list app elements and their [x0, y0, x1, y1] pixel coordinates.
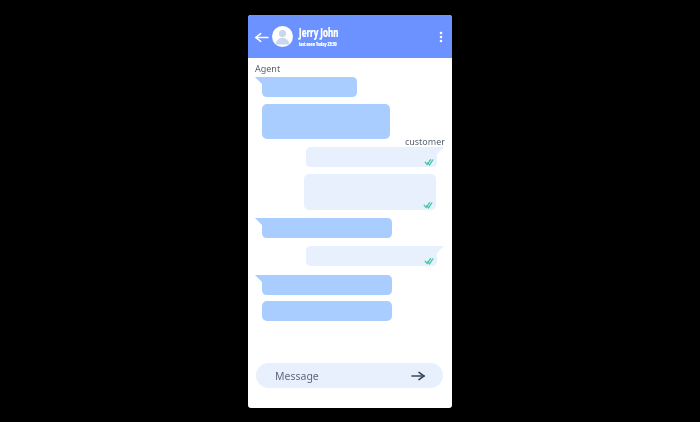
button[interactable]	[262, 104, 390, 139]
button[interactable]	[304, 174, 436, 210]
button[interactable]: More options	[431, 27, 451, 47]
button[interactable]: Send	[408, 366, 427, 385]
button[interactable]	[255, 218, 392, 238]
button[interactable]	[255, 275, 392, 295]
staticText: Message	[275, 369, 319, 383]
button[interactable]: Message	[256, 363, 443, 388]
button[interactable]	[306, 246, 444, 266]
button[interactable]	[306, 147, 444, 167]
button[interactable]	[255, 77, 357, 97]
staticText: Agent	[255, 62, 281, 74]
staticText: customer	[248, 135, 445, 147]
button[interactable]: Back	[251, 27, 271, 47]
staticText: last seen Today 23:30	[299, 41, 337, 48]
button[interactable]	[262, 301, 392, 321]
staticText: Jerry John	[299, 25, 339, 41]
